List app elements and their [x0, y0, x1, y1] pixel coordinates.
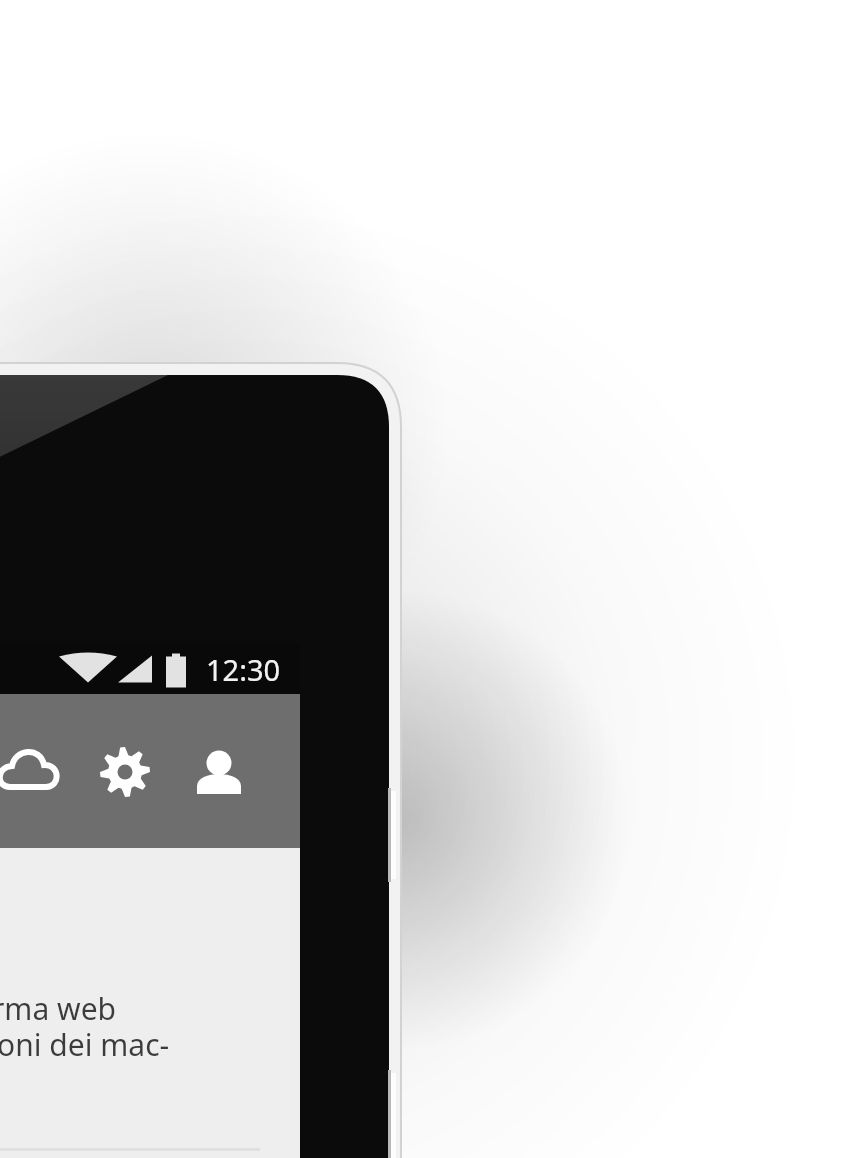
button[interactable]: Settings	[89, 736, 161, 808]
button[interactable]: Account	[183, 737, 255, 809]
staticText: piattaforma web simulazioni dei mac-	[0, 988, 170, 1065]
staticText: 12:30	[206, 650, 281, 689]
button[interactable]: piattaforma web simulazioni dei mac-	[0, 988, 170, 1065]
button[interactable]: Cloud sync	[0, 737, 68, 809]
